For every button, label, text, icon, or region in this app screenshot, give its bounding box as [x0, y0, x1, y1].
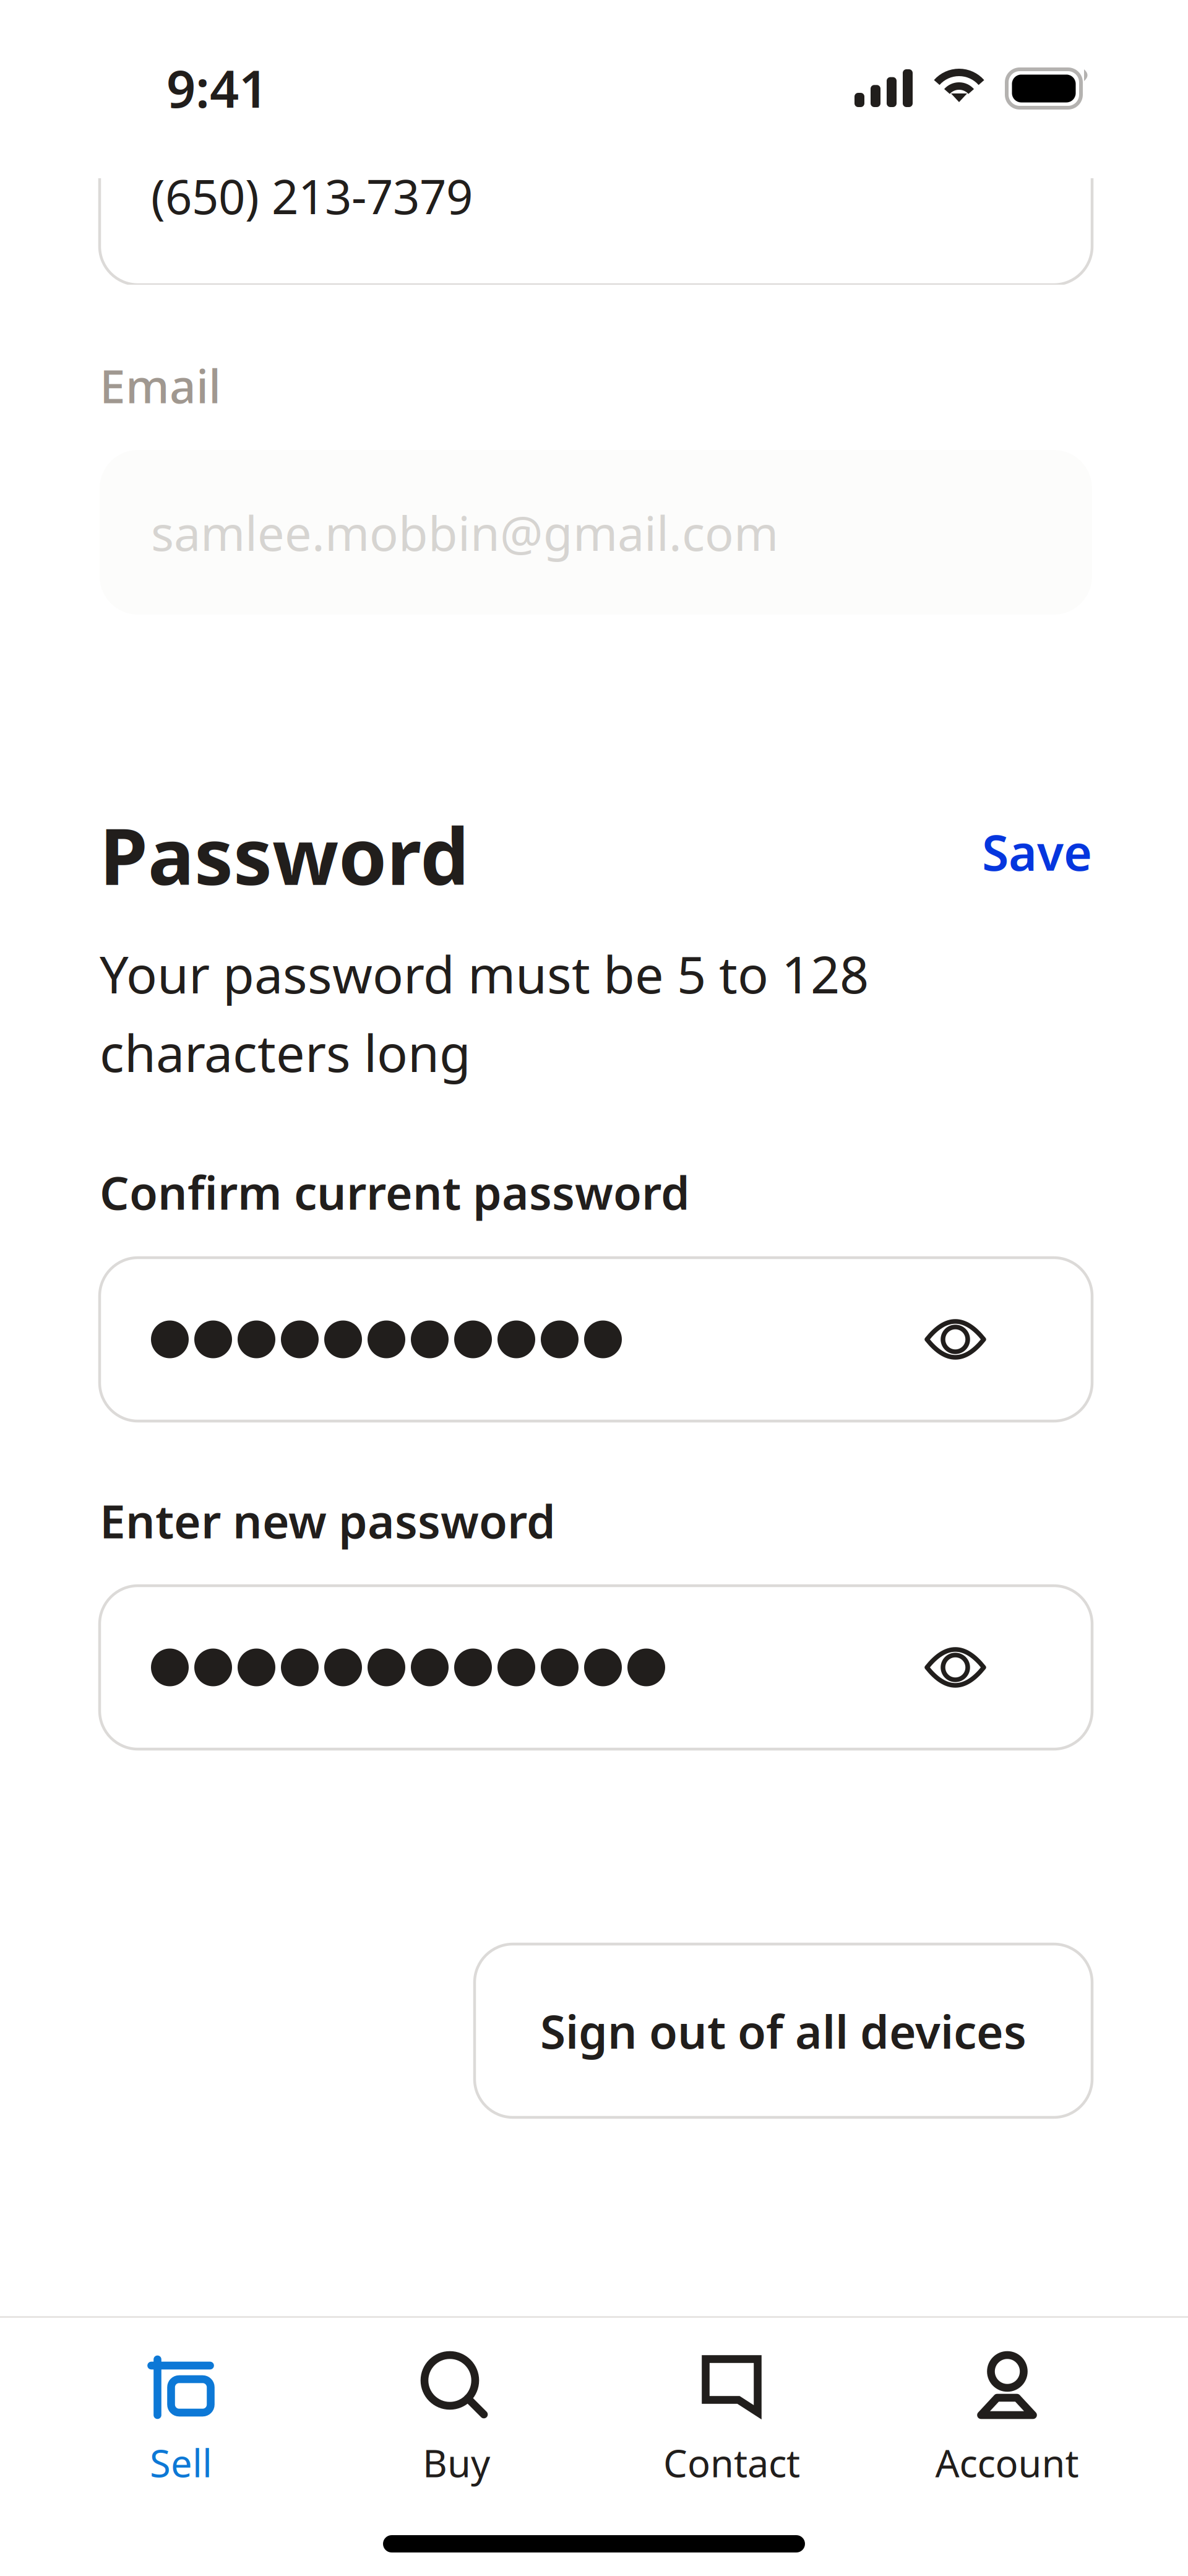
staticText: Sell	[150, 2437, 212, 2488]
button[interactable]: Sell	[43, 2355, 319, 2479]
button[interactable]: Account	[869, 2355, 1145, 2479]
staticText: Enter new password	[100, 1490, 556, 1551]
button[interactable]: Show current password	[100, 1258, 1092, 1421]
button[interactable]: (650) 213-7379	[0, 178, 1188, 285]
staticText: characters long	[100, 1018, 471, 1086]
button[interactable]: Show password	[910, 1303, 1001, 1375]
staticText: Buy	[423, 2437, 490, 2488]
button[interactable]: Sign out of all devices	[475, 1944, 1092, 2117]
staticText: (650) 213-7379	[151, 165, 473, 227]
button[interactable]: Buy	[319, 2355, 594, 2479]
staticText: Password	[100, 803, 469, 906]
staticText: Sign out of all devices	[540, 2000, 1027, 2061]
staticText: 9:41	[166, 54, 268, 122]
staticText: Confirm current password	[100, 1161, 690, 1223]
staticText: Your password must be 5 to 128	[100, 940, 869, 1007]
button[interactable]: Contact	[594, 2355, 869, 2479]
button[interactable]: Show password	[910, 1632, 1001, 1703]
staticText: Account	[935, 2437, 1079, 2488]
staticText: samlee.mobbin@gmail.com	[151, 501, 778, 564]
staticText: Contact	[663, 2437, 800, 2488]
button[interactable]: Save	[982, 814, 1092, 896]
button[interactable]: Show new password	[100, 1586, 1092, 1749]
staticText: Email	[100, 355, 221, 416]
staticText: Save	[982, 819, 1092, 884]
